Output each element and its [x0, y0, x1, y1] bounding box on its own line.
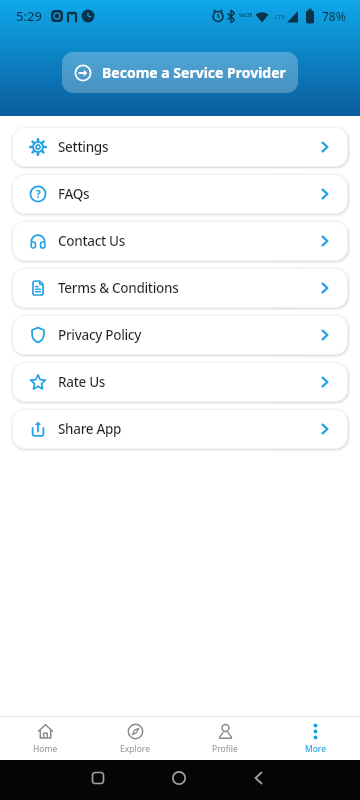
staticText: 78% — [322, 8, 346, 24]
button[interactable]: Rate Us — [12, 362, 348, 402]
button[interactable]: More — [270, 717, 360, 760]
staticText: Contact Us — [58, 232, 126, 250]
staticText: FAQs — [58, 185, 90, 203]
button[interactable]: Become a Service Provider — [62, 52, 298, 93]
button[interactable]: Share App — [12, 409, 348, 449]
button[interactable]: Profile — [180, 717, 270, 760]
staticText: Become a Service Provider — [102, 63, 286, 82]
staticText: Rate Us — [58, 373, 106, 391]
staticText: Explore — [120, 743, 150, 755]
staticText: Share App — [58, 420, 122, 438]
button[interactable]: Home — [0, 717, 90, 760]
button[interactable]: Settings — [12, 127, 348, 167]
button[interactable]: Explore — [90, 717, 180, 760]
button[interactable]: ? — [12, 174, 348, 214]
staticText: 5:29 — [16, 7, 42, 25]
staticText: More — [305, 743, 326, 755]
staticText: Privacy Policy — [58, 326, 142, 344]
button[interactable]: Terms & Conditions — [12, 268, 348, 308]
button[interactable]: Privacy Policy — [12, 315, 348, 355]
button[interactable]: Contact Us — [12, 221, 348, 261]
staticText: Terms & Conditions — [58, 279, 179, 297]
staticText: ? — [36, 187, 41, 201]
staticText: VoLTE — [239, 12, 253, 18]
staticText: Settings — [58, 138, 109, 156]
staticText: Profile — [212, 743, 238, 755]
staticText: LTE — [275, 13, 285, 21]
staticText: Home — [33, 743, 58, 755]
